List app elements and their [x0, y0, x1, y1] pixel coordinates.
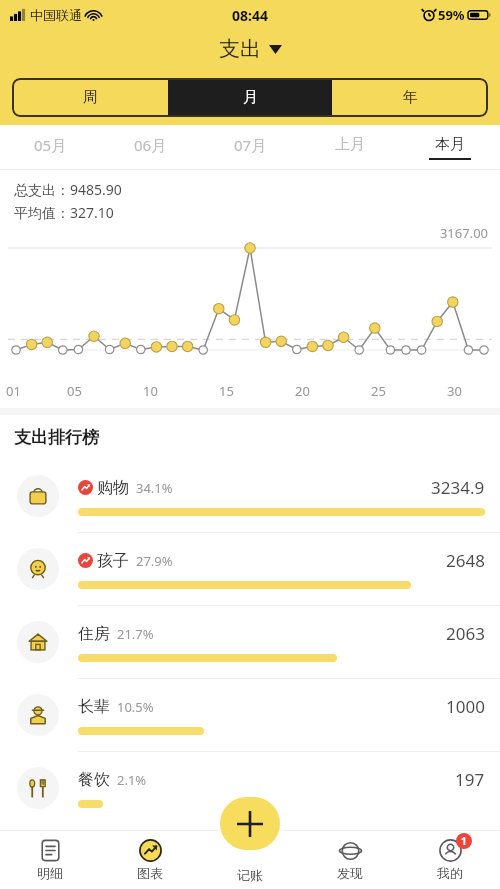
staticText: 明细	[37, 865, 63, 881]
button[interactable]: 05月	[0, 125, 100, 170]
staticText: 月	[243, 88, 258, 107]
button[interactable]: 记账	[220, 797, 280, 850]
staticText: 10	[143, 382, 158, 400]
staticText: 支出	[219, 36, 261, 62]
staticText: 05	[67, 382, 82, 400]
staticText: 15	[219, 382, 234, 400]
button[interactable]: 餐饮	[0, 752, 500, 824]
staticText: 平均值：327.10	[14, 203, 114, 222]
staticText: 中国联通	[30, 7, 82, 23]
staticText: 孩子	[97, 551, 129, 571]
staticText: 上月	[335, 135, 365, 154]
staticText: 记账	[237, 867, 263, 883]
staticText: 餐饮	[78, 770, 110, 790]
staticText: 2.1%	[117, 771, 147, 789]
button[interactable]: 周	[12, 78, 168, 117]
staticText: 长辈	[78, 697, 110, 717]
button[interactable]: 上月	[300, 125, 400, 170]
staticText: 59%	[438, 6, 465, 24]
staticText: 30	[447, 382, 462, 400]
staticText: 25	[371, 382, 386, 400]
button[interactable]: 年	[332, 78, 488, 117]
staticText: 1	[461, 834, 467, 848]
button[interactable]: 我的	[400, 830, 500, 889]
button[interactable]: 孩子	[0, 533, 500, 605]
button[interactable]: 图表	[100, 830, 200, 889]
button[interactable]: 购物	[0, 460, 500, 532]
button[interactable]: 月	[168, 78, 332, 117]
button[interactable]: 本月	[400, 125, 500, 170]
staticText: 34.1%	[136, 479, 173, 497]
staticText: 20	[295, 382, 310, 400]
staticText: 周	[83, 88, 98, 107]
staticText: 图表	[137, 865, 163, 881]
other: 明细	[39, 839, 62, 862]
button[interactable]: 发现	[300, 830, 400, 889]
button[interactable]: 支出	[211, 34, 290, 64]
staticText: 2063	[446, 622, 485, 645]
button[interactable]: 06月	[100, 125, 200, 170]
staticText: 3234.9	[431, 476, 485, 499]
staticText: 3167.00	[0, 224, 488, 242]
staticText: 05月	[34, 135, 67, 155]
other: 发现	[339, 839, 362, 862]
staticText: 27.9%	[136, 552, 173, 570]
button[interactable]: 07月	[200, 125, 300, 170]
staticText: 总支出：9485.90	[14, 180, 122, 199]
staticText: 08:44	[232, 6, 268, 25]
other: 我的	[439, 839, 462, 862]
staticText: 发现	[337, 865, 363, 881]
staticText: 21.7%	[117, 625, 154, 643]
button[interactable]: 住房	[0, 606, 500, 678]
staticText: 购物	[97, 478, 129, 498]
staticText: 01	[6, 382, 21, 400]
staticText: 本月	[435, 135, 465, 154]
staticText: 年	[403, 88, 418, 107]
staticText: 197	[455, 768, 485, 791]
staticText: 住房	[78, 624, 110, 644]
button[interactable]: 明细	[0, 830, 100, 889]
staticText: 06月	[134, 135, 167, 155]
staticText: 07月	[234, 135, 267, 155]
button[interactable]: 长辈	[0, 679, 500, 751]
other: 图表	[139, 839, 162, 862]
staticText: 支出排行榜	[14, 427, 99, 448]
staticText: 2648	[446, 549, 485, 572]
staticText: 我的	[437, 865, 463, 881]
staticText: 10.5%	[117, 698, 154, 716]
staticText: 1000	[446, 695, 485, 718]
